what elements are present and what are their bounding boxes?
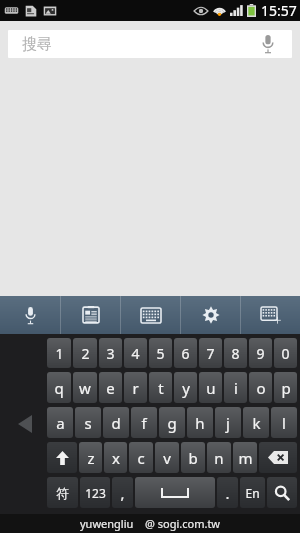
staticText: u	[206, 378, 216, 398]
button[interactable]: o	[249, 372, 272, 403]
staticText: k	[252, 413, 261, 433]
button[interactable]: 搜尋	[8, 30, 292, 58]
button[interactable]: c	[129, 442, 153, 473]
staticText: .	[225, 483, 230, 503]
staticText: 3	[106, 344, 115, 363]
staticText: w	[79, 378, 91, 398]
staticText: g	[167, 413, 177, 433]
staticText: 15:57	[261, 1, 297, 20]
staticText: 0	[281, 344, 290, 363]
button[interactable]: Voice input	[0, 296, 60, 334]
staticText: c	[137, 448, 145, 468]
staticText: r	[132, 378, 139, 398]
staticText: 搜尋	[22, 35, 52, 54]
button[interactable]: 123	[80, 477, 110, 508]
button[interactable]: l	[271, 407, 297, 438]
button[interactable]: 0	[274, 338, 297, 368]
button[interactable]: Keyboard layout	[121, 296, 180, 334]
button[interactable]: y	[174, 372, 197, 403]
button[interactable]: 2	[73, 338, 97, 368]
staticText: a	[56, 413, 65, 433]
staticText: yuwengliu	[80, 516, 134, 531]
button[interactable]: i	[224, 372, 247, 403]
staticText: q	[54, 378, 64, 398]
staticText: e	[106, 378, 115, 398]
button[interactable]: w	[73, 372, 97, 403]
button[interactable]: p	[274, 372, 297, 403]
button[interactable]: En	[240, 477, 265, 508]
staticText: 2	[81, 344, 90, 363]
staticText: o	[256, 378, 266, 398]
button[interactable]: del	[259, 442, 297, 473]
staticText: y	[182, 378, 190, 398]
staticText: l	[282, 413, 286, 433]
button[interactable]: ,	[112, 477, 133, 508]
staticText: j	[226, 413, 230, 433]
button[interactable]: 4	[124, 338, 147, 368]
button[interactable]: a	[47, 407, 73, 438]
button[interactable]: e	[99, 372, 122, 403]
staticText: b	[188, 448, 198, 468]
button[interactable]: 6	[174, 338, 197, 368]
button[interactable]: k	[243, 407, 269, 438]
button[interactable]: j	[215, 407, 241, 438]
button[interactable]: 9	[249, 338, 272, 368]
staticText: 4	[131, 344, 140, 363]
staticText: z	[87, 448, 95, 468]
button[interactable]: g	[159, 407, 185, 438]
button[interactable]: 3	[99, 338, 122, 368]
button[interactable]: .	[217, 477, 238, 508]
button[interactable]: t	[149, 372, 172, 403]
staticText: 5	[156, 344, 165, 363]
staticText: f	[141, 413, 147, 433]
button[interactable]: 5	[149, 338, 172, 368]
staticText: h	[195, 413, 205, 433]
button[interactable]: 符	[47, 477, 78, 508]
button[interactable]: d	[103, 407, 129, 438]
button[interactable]: s	[75, 407, 101, 438]
button[interactable]: n	[207, 442, 231, 473]
button[interactable]: q	[47, 372, 71, 403]
staticText: t	[158, 378, 164, 398]
staticText: x	[112, 448, 120, 468]
button[interactable]: shift	[47, 442, 77, 473]
button[interactable]: Clipboard	[61, 296, 120, 334]
button[interactable]: 7	[199, 338, 222, 368]
button[interactable]: u	[199, 372, 222, 403]
button[interactable]: Add keyboard	[241, 296, 300, 334]
button[interactable]: m	[233, 442, 257, 473]
button[interactable]: search	[267, 477, 297, 508]
button[interactable]: 8	[224, 338, 247, 368]
staticText: m	[238, 448, 253, 468]
staticText: @ sogi.com.tw	[145, 516, 221, 531]
button[interactable]: space	[135, 477, 215, 508]
staticText: 6	[181, 344, 190, 363]
staticText: En	[245, 485, 260, 501]
button[interactable]: h	[187, 407, 213, 438]
staticText: 符	[56, 485, 69, 501]
button[interactable]: b	[181, 442, 205, 473]
button[interactable]: r	[124, 372, 147, 403]
button[interactable]: 1	[47, 338, 71, 368]
button[interactable]: Voice search	[254, 30, 282, 58]
staticText: n	[214, 448, 224, 468]
staticText: 8	[231, 344, 240, 363]
staticText: 123	[85, 485, 106, 501]
staticText: 7	[206, 344, 215, 363]
staticText: v	[163, 448, 171, 468]
button[interactable]: Back	[10, 409, 40, 439]
staticText: 9	[256, 344, 265, 363]
staticText: s	[84, 413, 92, 433]
staticText: d	[111, 413, 121, 433]
button[interactable]: z	[79, 442, 102, 473]
staticText: p	[281, 378, 291, 398]
button[interactable]: Settings	[181, 296, 240, 334]
staticText: ,	[120, 483, 125, 503]
button[interactable]: v	[155, 442, 179, 473]
button[interactable]: x	[104, 442, 127, 473]
button[interactable]: f	[131, 407, 157, 438]
staticText: i	[234, 378, 238, 398]
staticText: 1	[55, 344, 64, 363]
